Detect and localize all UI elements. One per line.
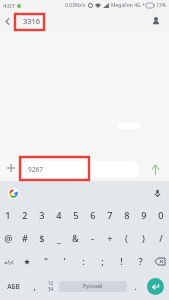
button[interactable]: ! xyxy=(112,250,131,273)
button[interactable]: Back xyxy=(0,11,15,31)
button[interactable]: Enter xyxy=(147,278,164,295)
staticText: 3 xyxy=(39,209,45,222)
staticText: 2 xyxy=(22,209,28,222)
staticText: ! xyxy=(120,255,123,268)
staticText: 9 xyxy=(141,209,147,222)
button[interactable]: - xyxy=(84,227,101,250)
staticText: 1 xyxy=(5,209,11,222)
staticText: $ xyxy=(39,232,45,245)
staticText: . xyxy=(134,281,137,292)
button[interactable]: ' xyxy=(55,250,74,273)
staticText: / xyxy=(159,232,163,245)
button[interactable]: _ xyxy=(50,227,67,250)
button[interactable]: , xyxy=(26,273,43,299)
button[interactable]: 8 xyxy=(118,204,135,227)
staticText: 8 xyxy=(124,209,130,222)
button[interactable]: $ xyxy=(33,227,50,250)
button[interactable]: ( xyxy=(118,227,135,250)
staticText: : xyxy=(82,255,85,268)
button[interactable]: Contact info xyxy=(145,11,167,31)
staticText: 34 xyxy=(48,286,54,292)
staticText: " xyxy=(44,255,48,268)
button[interactable]: & xyxy=(67,227,84,250)
button[interactable]: / xyxy=(152,227,169,250)
button[interactable]: Voice input xyxy=(152,188,162,198)
staticText: + xyxy=(107,232,113,245)
button[interactable]: 2 xyxy=(16,204,33,227)
staticText: , xyxy=(33,281,36,292)
staticText: ? xyxy=(138,255,143,268)
button[interactable]: ; xyxy=(93,250,112,273)
staticText: ' xyxy=(63,255,66,268)
button[interactable]: Google search xyxy=(7,187,19,199)
button[interactable]: " xyxy=(36,250,55,273)
staticText: & xyxy=(72,232,79,245)
button[interactable]: 7 xyxy=(101,204,118,227)
button[interactable]: : xyxy=(74,250,93,273)
staticText: + xyxy=(142,2,145,9)
button[interactable]: 4 xyxy=(50,204,67,227)
staticText: 3316 xyxy=(23,16,41,26)
button[interactable]: . xyxy=(128,273,142,299)
staticText: =\< xyxy=(4,258,14,266)
staticText: Русский xyxy=(83,283,103,290)
button[interactable]: Add attachment xyxy=(0,154,22,181)
staticText: 6 xyxy=(90,209,96,222)
button[interactable]: ) xyxy=(135,227,152,250)
button[interactable]: # xyxy=(16,227,33,250)
staticText: ; xyxy=(101,255,104,268)
staticText: ) xyxy=(142,232,145,245)
button[interactable]: Asterisk xyxy=(18,250,36,273)
staticText: @ xyxy=(4,232,13,245)
button[interactable]: =\< xyxy=(0,250,18,273)
button[interactable]: Numbers xyxy=(43,273,58,299)
staticText: 9267 xyxy=(28,165,43,174)
button[interactable]: 0 xyxy=(152,204,169,227)
staticText: 7 xyxy=(107,209,113,222)
staticText: 5 xyxy=(73,209,79,222)
button[interactable]: @ xyxy=(0,227,16,250)
button[interactable]: 6 xyxy=(84,204,101,227)
button[interactable]: 1 xyxy=(0,204,16,227)
staticText: 4:07 xyxy=(3,2,15,10)
button[interactable]: Send xyxy=(139,154,169,181)
button[interactable]: ? xyxy=(131,250,150,273)
staticText: # xyxy=(22,232,28,245)
staticText: 4 xyxy=(56,209,62,222)
button[interactable]: + xyxy=(101,227,118,250)
staticText: _ xyxy=(57,232,61,245)
staticText: - xyxy=(91,232,94,245)
button[interactable]: 5 xyxy=(67,204,84,227)
button[interactable]: АБВ xyxy=(0,273,26,299)
staticText: 12 xyxy=(48,280,54,286)
staticText: 13% xyxy=(156,2,166,9)
button[interactable]: 3 xyxy=(33,204,50,227)
staticText: 0 xyxy=(158,209,164,222)
button[interactable]: 9 xyxy=(135,204,152,227)
staticText: MegaFon 4G xyxy=(111,2,141,9)
staticText: 0.03Kb/s xyxy=(65,2,86,9)
button[interactable]: Русский xyxy=(59,281,127,292)
button[interactable]: 9267 xyxy=(22,161,139,178)
button[interactable]: Backspace xyxy=(150,250,169,273)
staticText: ( xyxy=(125,232,128,245)
staticText: АБВ xyxy=(7,282,20,291)
